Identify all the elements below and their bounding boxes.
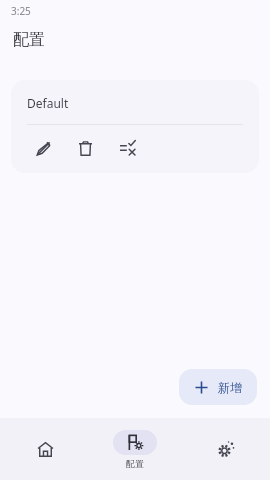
button[interactable]: Settings <box>180 418 270 480</box>
staticText: 配置 <box>126 458 144 469</box>
button[interactable]: Configuration <box>90 418 180 480</box>
button[interactable]: Home <box>0 418 90 480</box>
button[interactable]: Edit <box>27 132 59 164</box>
staticText: 3:25 <box>11 4 31 18</box>
button[interactable]: 新增 <box>179 369 257 405</box>
staticText: Default <box>27 95 69 111</box>
button[interactable]: Default <box>11 80 259 173</box>
button[interactable]: Delete <box>69 132 101 164</box>
staticText: 新增 <box>218 380 242 395</box>
staticText: 配置 <box>13 30 45 50</box>
button[interactable]: Select items <box>111 132 143 164</box>
